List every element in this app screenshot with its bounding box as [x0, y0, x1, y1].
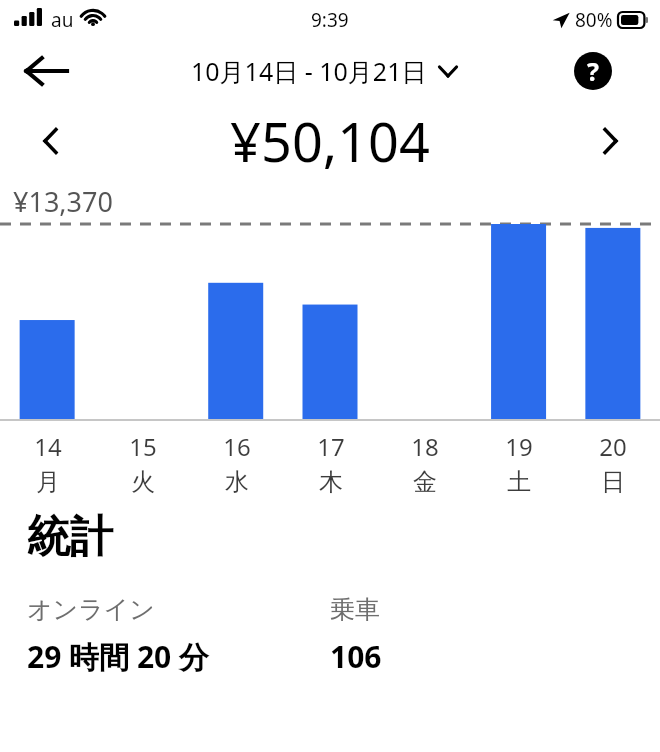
staticText: オンライン [27, 594, 155, 625]
button[interactable]: Previous week [22, 113, 78, 169]
button[interactable]: 18 [378, 430, 472, 496]
staticText: 火 [131, 467, 155, 496]
staticText: ¥50,104 [230, 104, 430, 178]
staticText: 木 [319, 467, 343, 496]
staticText: 106 [330, 636, 382, 677]
button[interactable]: Next week [582, 113, 638, 169]
staticText: 16 [223, 430, 251, 463]
staticText: 月 [36, 467, 60, 496]
staticText: 80% [575, 7, 613, 33]
staticText: 土 [507, 467, 531, 496]
button[interactable]: 16 [190, 430, 284, 496]
staticText: 10月14日 - 10月21日 [191, 54, 427, 88]
button[interactable]: オンライン [27, 594, 330, 677]
staticText: 17 [317, 430, 345, 463]
staticText: 金 [413, 467, 437, 496]
button[interactable]: 17 [284, 430, 378, 496]
button[interactable]: 15 [95, 430, 190, 496]
button[interactable]: 19 [472, 430, 566, 496]
staticText: 水 [225, 467, 249, 496]
staticText: 日 [601, 467, 625, 496]
staticText: 統計 [27, 510, 113, 564]
staticText: 乗車 [330, 594, 380, 625]
staticText: 18 [411, 430, 439, 463]
staticText: 14 [34, 430, 62, 463]
button[interactable]: 14 [0, 430, 95, 496]
button[interactable]: 10月14日 - 10月21日 [187, 50, 461, 92]
staticText: 20 [599, 430, 627, 463]
staticText: 15 [129, 430, 157, 463]
staticText: ¥13,370 [13, 183, 113, 220]
button[interactable]: Help [572, 50, 614, 92]
staticText: au [51, 7, 74, 33]
staticText: 29 時間 20 分 [27, 636, 210, 677]
button[interactable]: Back [18, 43, 74, 99]
button[interactable]: 乗車 [330, 594, 660, 677]
staticText: 9:39 [311, 7, 349, 33]
staticText: ? [587, 54, 599, 88]
staticText: 19 [505, 430, 533, 463]
button[interactable]: 20 [566, 430, 660, 496]
